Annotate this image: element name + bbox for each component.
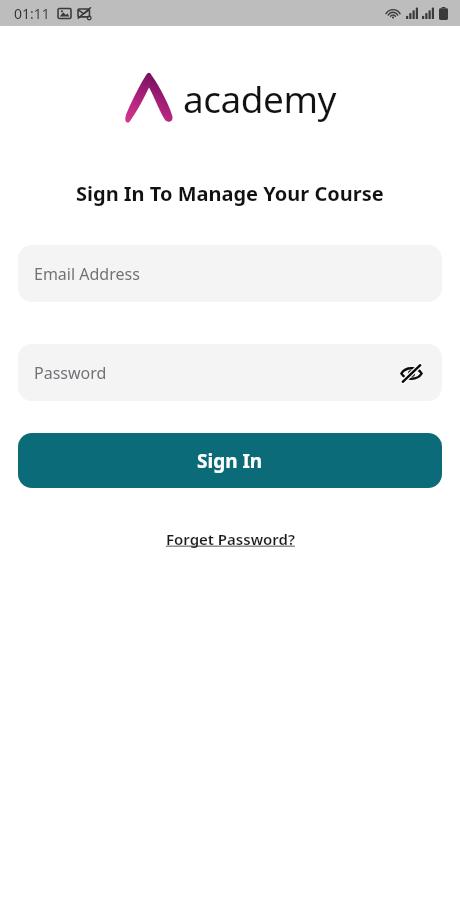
staticText: Sign In To Manage Your Course <box>76 180 384 207</box>
staticText: Sign In <box>197 448 263 474</box>
button[interactable]: Sign In <box>18 433 442 488</box>
button[interactable]: Password <box>18 344 442 401</box>
button[interactable]: Forget Password? <box>160 526 301 552</box>
staticText: academy <box>183 73 336 123</box>
button[interactable]: Show password <box>394 356 428 390</box>
button[interactable]: Email Address <box>18 245 442 302</box>
staticText: Password <box>34 362 107 384</box>
staticText: 01:11 <box>14 4 50 23</box>
staticText: Email Address <box>34 263 140 285</box>
staticText: Forget Password? <box>166 529 295 549</box>
